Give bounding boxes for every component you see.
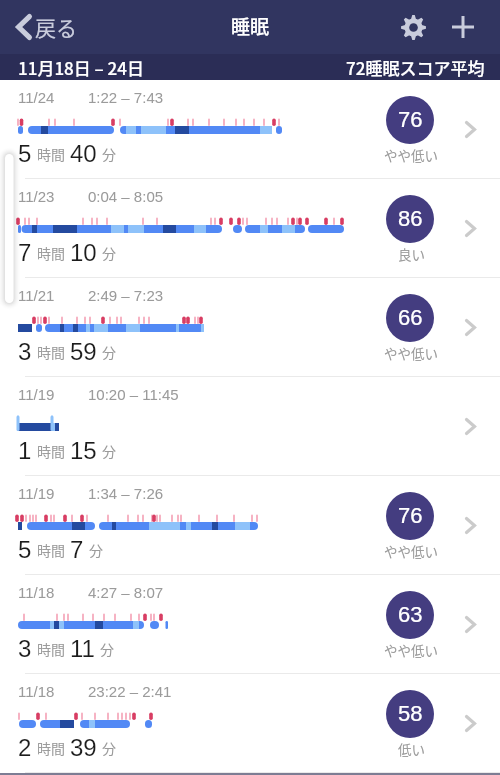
staticText: やや低い	[384, 541, 438, 561]
staticText: 分	[102, 738, 116, 758]
staticText: 低い	[398, 739, 425, 759]
staticText: 1	[18, 437, 32, 464]
staticText: 時間	[37, 738, 65, 758]
staticText: やや低い	[384, 343, 438, 363]
staticText: 4:27 – 8:07	[88, 584, 164, 601]
staticText: 23:22 – 2:41	[88, 683, 172, 700]
staticText: 11/19	[18, 386, 55, 403]
staticText: 3	[18, 635, 32, 662]
staticText: 時間	[37, 243, 65, 263]
staticText: 1:34 – 7:26	[88, 485, 164, 502]
button[interactable]: 11/18	[0, 575, 500, 673]
staticText: 時間	[37, 639, 65, 659]
staticText: 戻る	[35, 12, 77, 42]
staticText: 分	[102, 342, 116, 362]
button[interactable]: 戻る	[0, 6, 91, 48]
staticText: 59	[70, 338, 97, 365]
staticText: 66	[398, 305, 423, 330]
staticText: 分	[100, 639, 114, 659]
staticText: 分	[89, 540, 103, 560]
staticText: 11/21	[18, 287, 55, 304]
staticText: 76	[398, 503, 423, 528]
staticText: 11/23	[18, 188, 55, 205]
staticText: 時間	[37, 144, 65, 164]
staticText: 15	[70, 437, 97, 464]
staticText: 11/19	[18, 485, 55, 502]
staticText: やや低い	[384, 145, 438, 165]
staticText: 時間	[37, 441, 65, 461]
button[interactable]: Add	[443, 7, 483, 47]
staticText: 76	[398, 107, 423, 132]
button[interactable]: 11/21	[0, 278, 500, 376]
staticText: 5	[18, 536, 32, 563]
staticText: 11	[70, 635, 95, 662]
button[interactable]: 11/23	[0, 179, 500, 277]
staticText: 2	[18, 734, 32, 761]
staticText: 11/24	[18, 89, 55, 106]
staticText: 時間	[37, 540, 65, 560]
staticText: 7	[70, 536, 84, 563]
staticText: 58	[398, 701, 423, 726]
staticText: 11/18	[18, 683, 55, 700]
staticText: 63	[398, 602, 423, 627]
staticText: 10	[70, 239, 97, 266]
staticText: 5	[18, 140, 32, 167]
staticText: 39	[70, 734, 97, 761]
staticText: 11/18	[18, 584, 55, 601]
staticText: 0:04 – 8:05	[88, 188, 164, 205]
button[interactable]: Settings	[393, 7, 433, 47]
staticText: 分	[102, 441, 116, 461]
staticText: 72睡眠スコア平均	[346, 55, 485, 80]
staticText: 睡眠	[231, 12, 270, 40]
button[interactable]: 11/18	[0, 674, 500, 772]
staticText: 10:20 – 11:45	[88, 386, 179, 403]
staticText: 分	[102, 144, 116, 164]
staticText: 3	[18, 338, 32, 365]
button[interactable]: 11/24	[0, 80, 500, 178]
staticText: 7	[18, 239, 32, 266]
staticText: 86	[398, 206, 423, 231]
staticText: 分	[102, 243, 116, 263]
staticText: 11月18日 – 24日	[18, 55, 144, 80]
staticText: 40	[70, 140, 97, 167]
button[interactable]: 11/19	[0, 377, 500, 475]
staticText: 2:49 – 7:23	[88, 287, 164, 304]
staticText: 1:22 – 7:43	[88, 89, 164, 106]
staticText: 時間	[37, 342, 65, 362]
button[interactable]: 11/19	[0, 476, 500, 574]
staticText: 良い	[398, 244, 425, 264]
staticText: やや低い	[384, 640, 438, 660]
